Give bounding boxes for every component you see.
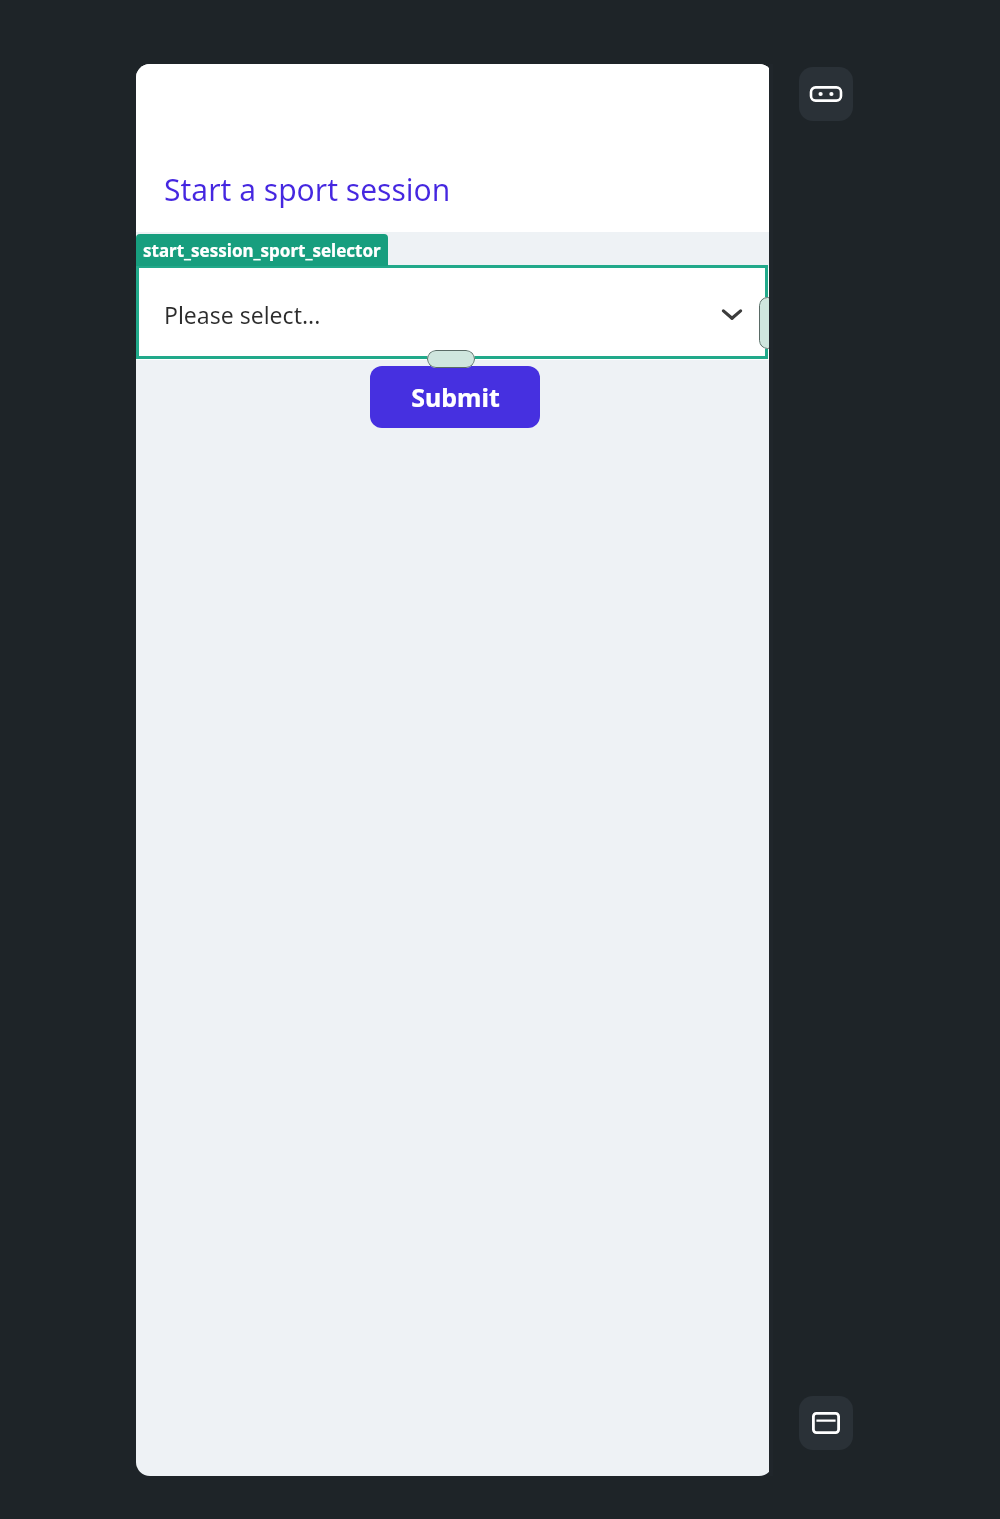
staticText: Select the sport <box>164 235 325 265</box>
button[interactable]: Layout inspector <box>799 1396 853 1450</box>
button[interactable]: Submit <box>370 366 540 428</box>
button[interactable]: Please select... <box>136 268 773 360</box>
staticText: Please select... <box>164 299 321 330</box>
button[interactable]: Resize horizontally <box>759 297 773 349</box>
button[interactable]: Device controls <box>799 67 853 121</box>
button[interactable]: Resize vertically <box>427 350 475 368</box>
staticText: Start a sport session <box>164 169 451 210</box>
staticText: Submit <box>411 380 500 414</box>
staticText: start_session_sport_selector <box>143 239 381 262</box>
